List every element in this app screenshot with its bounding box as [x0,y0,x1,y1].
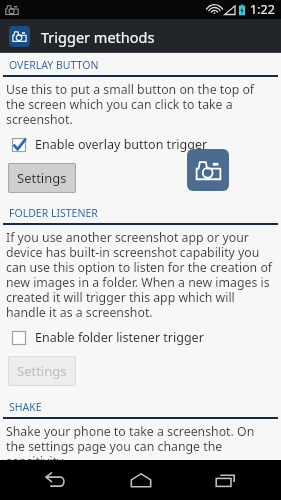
button[interactable]: Settings [8,356,76,386]
button[interactable]: Enable overlay button trigger [0,132,281,157]
staticText: If you use another screenshot app or you… [6,229,273,321]
button[interactable]: Back [28,460,84,500]
button[interactable]: Settings [8,163,76,193]
staticText: Use this to put a small button on the to… [6,81,273,128]
staticText: Shake your phone to take a screenshot. O… [6,423,273,460]
button[interactable]: Take screenshot [187,149,229,191]
staticText: Settings [17,362,67,380]
button[interactable]: Enable folder listener trigger [0,325,281,350]
staticText: Settings [17,169,67,187]
staticText: SHAKE [9,400,42,414]
button[interactable]: Home [113,460,169,500]
staticText: Trigger methods [41,27,155,47]
staticText: FOLDER LISTENER [9,206,98,220]
staticText: Enable folder listener trigger [35,329,204,346]
staticText: 1:22 [250,1,275,18]
staticText: OVERLAY BUTTON [9,58,99,72]
staticText: Enable overlay button trigger [35,136,208,153]
button[interactable]: Recent apps [197,460,253,500]
